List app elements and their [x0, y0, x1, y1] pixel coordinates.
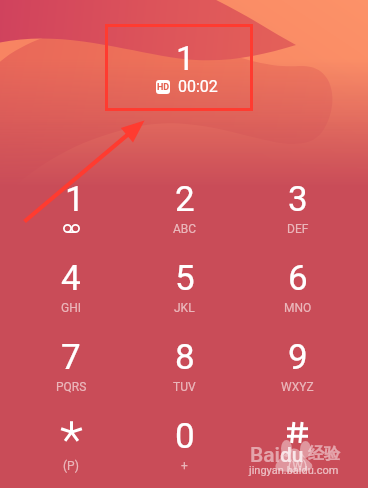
button[interactable]: 2	[128, 178, 241, 257]
button[interactable]: 8	[128, 336, 241, 415]
staticText: jingyan.baidu.com	[249, 464, 339, 477]
staticText: JKL	[174, 301, 195, 315]
staticText: 00:02	[178, 77, 218, 96]
staticText: 9	[288, 337, 308, 370]
staticText: du	[280, 443, 304, 468]
staticText: WXYZ	[281, 380, 314, 394]
staticText: TUV	[173, 380, 196, 394]
staticText: 7	[61, 337, 81, 370]
staticText: 1	[176, 39, 195, 78]
staticText: 8	[175, 337, 195, 370]
staticText: 2	[175, 179, 195, 212]
button[interactable]: 3	[241, 178, 354, 257]
button[interactable]: 0	[128, 415, 241, 488]
staticText: 4	[61, 258, 81, 291]
button[interactable]: (W)	[241, 415, 354, 488]
staticText: DEF	[287, 222, 309, 236]
staticText: Bai	[250, 443, 280, 468]
button[interactable]: 4	[14, 257, 128, 336]
staticText: +	[181, 459, 188, 473]
staticText: (P)	[63, 459, 79, 473]
button[interactable]: 6	[241, 257, 354, 336]
button[interactable]: (P)	[14, 415, 128, 488]
staticText: 6	[288, 258, 308, 291]
button[interactable]: 5	[128, 257, 241, 336]
staticText: MNO	[284, 301, 312, 315]
staticText: 1	[65, 179, 85, 212]
button[interactable]: 9	[241, 336, 354, 415]
staticText: 3	[288, 179, 308, 212]
staticText: 经验	[308, 444, 340, 464]
staticText: GHI	[61, 301, 81, 315]
staticText: ABC	[173, 222, 197, 236]
staticText: HD	[157, 82, 170, 93]
button[interactable]: 1	[14, 178, 128, 257]
button[interactable]: 7	[14, 336, 128, 415]
staticText: (W)	[288, 459, 308, 473]
staticText: 5	[175, 258, 195, 291]
staticText: PQRS	[56, 380, 87, 394]
staticText: 0	[175, 416, 195, 449]
